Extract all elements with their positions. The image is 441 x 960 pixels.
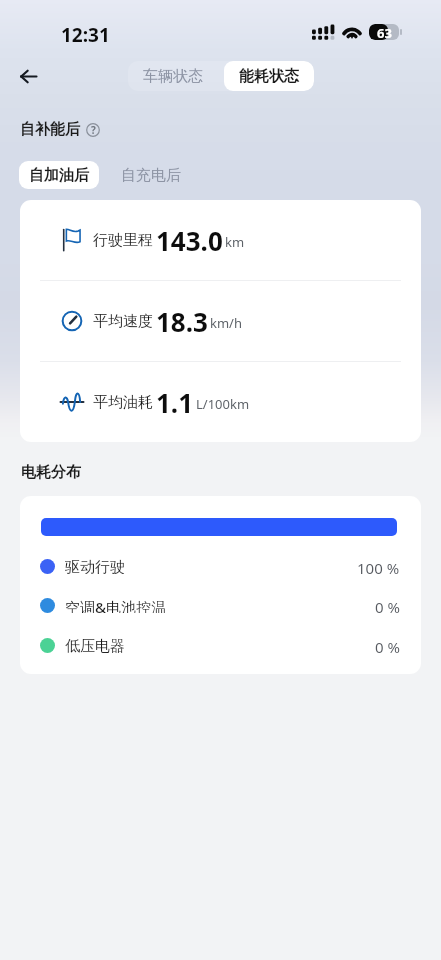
staticText: L/100km: [196, 395, 250, 413]
staticText: 0 %: [375, 597, 400, 613]
staticText: km: [225, 233, 245, 251]
button[interactable]: 车辆状态: [128, 61, 218, 91]
staticText: 自充电后: [121, 166, 181, 185]
button[interactable]: 自充电后: [111, 161, 191, 189]
staticText: 63: [377, 24, 392, 40]
staticText: ?: [91, 123, 96, 137]
staticText: 0 %: [375, 637, 400, 653]
button[interactable]: 空调&电池控温: [20, 597, 421, 613]
staticText: 驱动行驶: [65, 558, 125, 574]
staticText: 车辆状态: [143, 67, 203, 86]
staticText: 自加油后: [29, 166, 89, 185]
staticText: 18.3: [156, 304, 208, 339]
button[interactable]: 驱动行驶: [20, 558, 421, 574]
staticText: 100 %: [357, 558, 400, 574]
button[interactable]: Help: [86, 123, 100, 137]
button[interactable]: 平均速度: [20, 281, 421, 361]
button[interactable]: 行驶里程: [20, 200, 421, 280]
staticText: 自补能后: [20, 120, 80, 139]
staticText: 能耗状态: [239, 67, 299, 86]
staticText: km/h: [210, 314, 242, 332]
button[interactable]: 自加油后: [19, 161, 99, 189]
staticText: 143.0: [156, 223, 223, 258]
staticText: 空调&电池控温: [65, 597, 167, 613]
staticText: 平均速度: [93, 312, 153, 331]
staticText: 12:31: [61, 22, 110, 48]
staticText: 电耗分布: [21, 463, 81, 482]
button[interactable]: 低压电器: [20, 637, 421, 653]
button[interactable]: 能耗状态: [224, 61, 314, 91]
staticText: 平均油耗: [93, 393, 153, 412]
button[interactable]: Back: [8, 56, 48, 96]
staticText: 1.1: [156, 385, 194, 420]
staticText: 行驶里程: [93, 231, 153, 250]
staticText: 低压电器: [65, 637, 125, 653]
button[interactable]: 平均油耗: [20, 362, 421, 442]
